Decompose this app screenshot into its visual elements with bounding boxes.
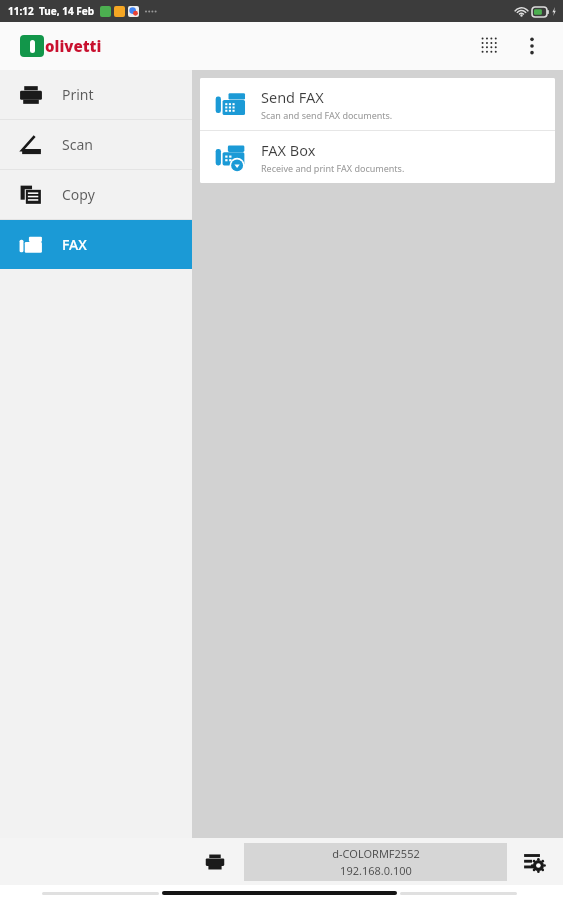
button[interactable]: Scan	[0, 120, 192, 169]
button[interactable]: Apps	[469, 25, 511, 67]
staticText: FAX	[62, 235, 87, 254]
button[interactable]: Printer	[192, 839, 238, 885]
staticText: Send FAX	[261, 87, 324, 107]
button[interactable]: Copy	[0, 170, 192, 219]
staticText: olivetti	[45, 36, 102, 56]
staticText: Copy	[62, 185, 95, 204]
staticText: Print	[62, 85, 94, 104]
button[interactable]: Send FAX	[200, 78, 555, 130]
staticText: d-COLORMF2552	[332, 846, 420, 861]
button[interactable]: Print	[0, 70, 192, 119]
button[interactable]: More options	[511, 25, 553, 67]
staticText: 11:12	[8, 4, 34, 18]
staticText: FAX Box	[261, 140, 316, 160]
staticText: Scan	[62, 135, 93, 154]
button[interactable]: FAX	[0, 220, 192, 269]
staticText: 192.168.0.100	[340, 863, 412, 878]
staticText: Scan and send FAX documents.	[261, 109, 393, 121]
button[interactable]: d-COLORMF2552	[244, 843, 507, 881]
button[interactable]: Device settings	[511, 839, 557, 885]
staticText: Tue, 14 Feb	[39, 4, 95, 18]
button[interactable]: FAX Box	[200, 131, 555, 183]
staticText: Receive and print FAX documents.	[261, 162, 405, 174]
